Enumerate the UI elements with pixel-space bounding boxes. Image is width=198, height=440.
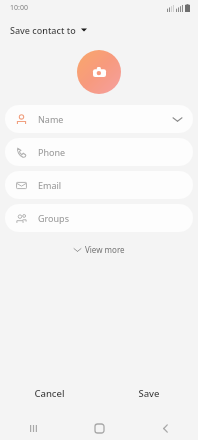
button[interactable]: Add contact photo <box>77 50 121 94</box>
button[interactable]: Home <box>66 416 132 440</box>
button[interactable]: Recents <box>0 416 66 440</box>
staticText: Phone <box>38 146 66 158</box>
button[interactable]: Cancel <box>0 380 99 406</box>
button[interactable]: Save contact to <box>0 20 198 40</box>
button[interactable]: Name <box>5 105 193 133</box>
staticText: Save contact to <box>10 24 76 36</box>
button[interactable]: Groups <box>5 204 193 232</box>
button[interactable]: Phone <box>5 138 193 166</box>
staticText: Email <box>38 179 62 191</box>
staticText: Name <box>38 113 64 125</box>
staticText: Groups <box>38 212 69 224</box>
button[interactable]: Save <box>99 380 198 406</box>
staticText: Save <box>138 387 160 400</box>
staticText: 10:00 <box>10 3 28 13</box>
staticText: Cancel <box>34 387 65 400</box>
staticText: View more <box>85 244 125 255</box>
button[interactable]: Email <box>5 171 193 199</box>
button[interactable]: Back <box>132 416 198 440</box>
button[interactable]: View more <box>66 240 133 259</box>
